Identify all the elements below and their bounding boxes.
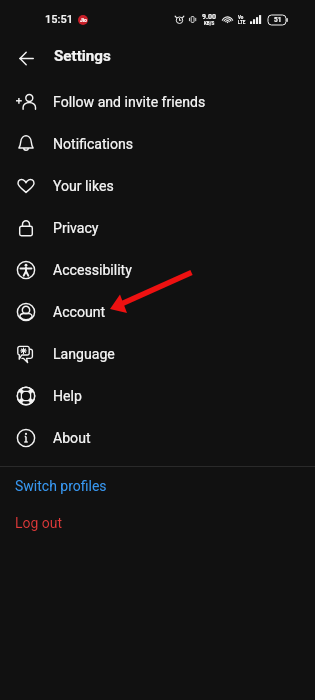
staticText: Log out [15,515,63,531]
staticText: 15:51 [45,13,73,26]
staticText: Privacy [53,220,99,237]
staticText: Settings [54,47,111,65]
staticText: Notifications [53,136,134,153]
button[interactable]: Follow and invite friends [0,81,315,123]
button[interactable]: Privacy [0,207,315,249]
staticText: Jio [80,17,87,23]
staticText: LTE [238,20,246,25]
button[interactable]: Log out [0,504,315,541]
button[interactable]: Back [11,43,42,74]
staticText: Language [53,346,115,363]
button[interactable]: About [0,417,315,459]
staticText: Your likes [53,178,114,195]
staticText: Vo [238,15,244,20]
button[interactable]: Language [0,333,315,375]
staticText: 9.00 [202,13,217,21]
staticText: Follow and invite friends [53,94,206,111]
staticText: KB/S [204,21,215,26]
staticText: About [53,430,91,447]
staticText: Accessibility [53,262,132,279]
button[interactable]: Notifications [0,123,315,165]
staticText: Help [53,388,82,405]
staticText: Account [53,304,106,321]
button[interactable]: Accessibility [0,249,315,291]
staticText: Switch profiles [15,478,107,494]
button[interactable]: Your likes [0,165,315,207]
staticText: 51 [274,16,282,24]
button[interactable]: Switch profiles [0,467,315,504]
button[interactable]: Help [0,375,315,417]
button[interactable]: Account [0,291,315,333]
